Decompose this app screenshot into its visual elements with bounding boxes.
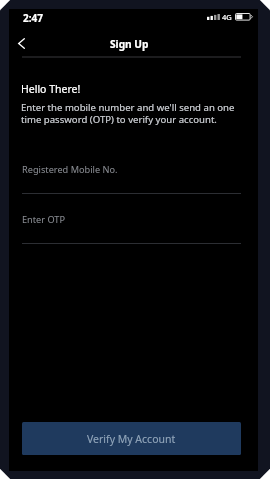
staticText: Enter the mobile number and we'll send a…: [21, 101, 245, 126]
staticText: Sign Up: [110, 37, 149, 51]
staticText: Hello There!: [21, 82, 81, 96]
staticText: 4G: [222, 12, 232, 22]
staticText: Enter OTP: [22, 213, 66, 226]
button[interactable]: Verify My Account: [22, 422, 241, 455]
button[interactable]: Registered Mobile No.: [22, 163, 241, 194]
staticText: Verify My Account: [87, 432, 176, 446]
button[interactable]: Enter OTP: [22, 213, 241, 244]
button[interactable]: Back: [9, 31, 33, 55]
staticText: 2:47: [23, 11, 43, 25]
staticText: Registered Mobile No.: [22, 163, 118, 176]
